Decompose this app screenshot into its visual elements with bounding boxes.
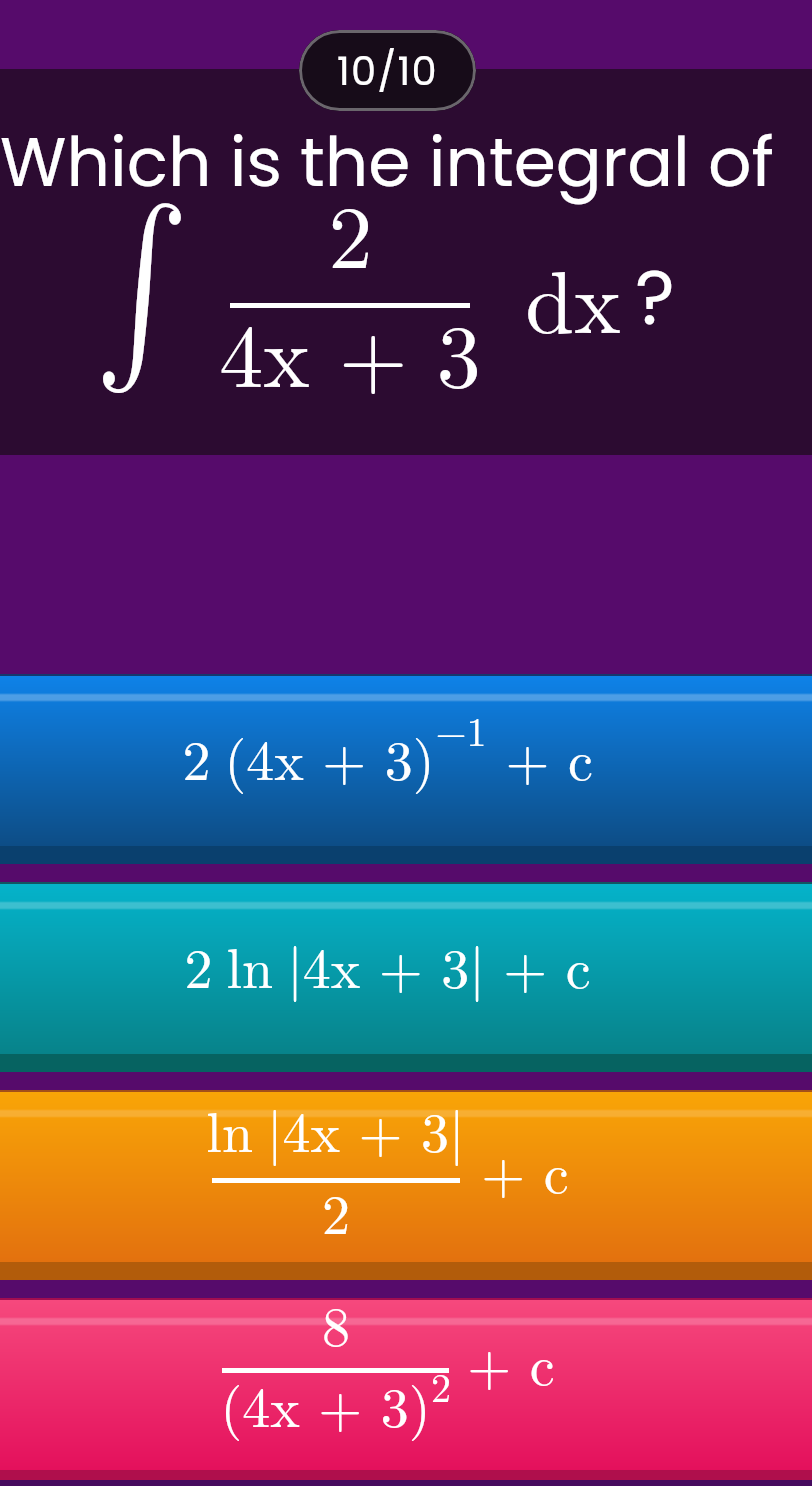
button[interactable]: 8 [0, 1298, 812, 1486]
button[interactable]: 2 (4x + 3) [0, 674, 812, 864]
staticText: ∫ [95, 203, 189, 374]
button[interactable]: 2 ln |4x + 3| + c [0, 882, 812, 1072]
staticText: + c [487, 717, 593, 796]
button[interactable]: 10/10 [299, 30, 476, 111]
staticText: + c [481, 1130, 569, 1209]
staticText: 2 (4x + 3) [182, 717, 435, 796]
staticText: 4x + 3 [219, 288, 481, 413]
staticText: 10/10 [337, 43, 438, 99]
staticText: 2 [322, 1171, 350, 1250]
staticText: −1 [435, 701, 487, 758]
staticText: Which is the integral of [0, 115, 793, 210]
staticText: + c [467, 1322, 555, 1401]
staticText: 2 [431, 1357, 451, 1414]
staticText: 2 [328, 169, 373, 294]
staticText: 8 [322, 1283, 350, 1362]
staticText: dx [525, 234, 621, 359]
staticText: ? [635, 244, 675, 350]
button[interactable]: ln |4x + 3| [0, 1090, 812, 1280]
staticText: 2 ln |4x + 3| + c [184, 925, 591, 1004]
staticText: (4x + 3) [220, 1364, 431, 1443]
staticText: ln |4x + 3| [206, 1089, 465, 1168]
